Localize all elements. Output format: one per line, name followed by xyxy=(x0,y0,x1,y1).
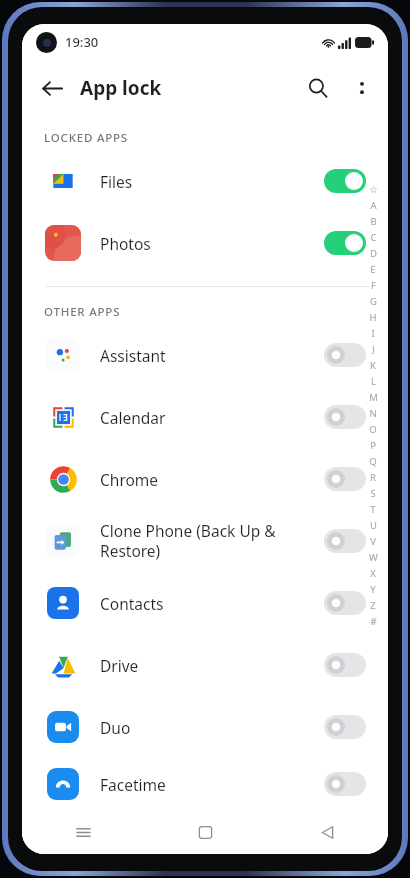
staticText: M xyxy=(369,391,378,404)
button[interactable]: F xyxy=(364,278,382,293)
button[interactable]: Clone Phone (Back Up & Restore) xyxy=(22,510,388,572)
button[interactable]: Locked, on xyxy=(324,231,366,255)
staticText: 19:30 xyxy=(65,33,99,51)
staticText: N xyxy=(369,407,377,420)
button[interactable]: I xyxy=(364,326,382,341)
staticText: O xyxy=(369,423,377,436)
staticText: C xyxy=(370,231,377,244)
staticText: Calendar xyxy=(100,407,316,428)
button[interactable]: Chrome xyxy=(22,448,388,510)
button[interactable]: G xyxy=(364,294,382,309)
staticText: Contacts xyxy=(100,593,316,614)
button[interactable]: Assistant xyxy=(22,324,388,386)
button[interactable]: Unlocked, off xyxy=(324,772,366,796)
button[interactable]: R xyxy=(364,470,382,485)
button[interactable]: S xyxy=(364,486,382,501)
staticText: # xyxy=(370,615,377,628)
staticText: J xyxy=(372,343,375,356)
staticText: P xyxy=(370,439,376,452)
button[interactable]: V xyxy=(364,534,382,549)
staticText: Z xyxy=(370,599,376,612)
button[interactable]: M xyxy=(364,390,382,405)
button[interactable]: Z xyxy=(364,598,382,613)
button[interactable]: Y xyxy=(364,582,382,597)
button[interactable]: Locked, on xyxy=(324,169,366,193)
button[interactable]: Calendar xyxy=(22,386,388,448)
button[interactable]: H xyxy=(364,310,382,325)
staticText: D xyxy=(370,247,377,260)
staticText: OTHER APPS xyxy=(44,304,121,320)
staticText: App lock xyxy=(80,75,162,101)
staticText: E xyxy=(370,263,376,276)
staticText: U xyxy=(370,519,377,532)
button[interactable]: A xyxy=(364,198,382,213)
staticText: LOCKED APPS xyxy=(44,130,128,146)
button[interactable]: More options xyxy=(340,66,384,110)
staticText: Drive xyxy=(100,655,316,676)
staticText: S xyxy=(370,487,376,500)
button[interactable]: Photos xyxy=(22,212,388,274)
button[interactable]: Back xyxy=(266,810,388,854)
staticText: F xyxy=(371,279,376,292)
staticText: Photos xyxy=(100,233,316,254)
button[interactable]: P xyxy=(364,438,382,453)
button[interactable]: J xyxy=(364,342,382,357)
button[interactable]: X xyxy=(364,566,382,581)
button[interactable]: # xyxy=(364,614,382,629)
staticText: A xyxy=(370,199,377,212)
button[interactable]: O xyxy=(364,422,382,437)
button[interactable]: Drive xyxy=(22,634,388,696)
button[interactable]: Files xyxy=(22,150,388,212)
button[interactable]: Home xyxy=(144,810,266,854)
staticText: I xyxy=(371,327,375,340)
button[interactable]: Contacts xyxy=(22,572,388,634)
button[interactable]: U xyxy=(364,518,382,533)
staticText: X xyxy=(370,567,376,580)
staticText: ☆ xyxy=(369,184,378,195)
staticText: Clone Phone (Back Up & Restore) xyxy=(100,520,316,562)
staticText: G xyxy=(370,295,377,308)
button[interactable]: Recent apps xyxy=(22,810,144,854)
button[interactable]: D xyxy=(364,246,382,261)
staticText: Files xyxy=(100,171,316,192)
staticText: L xyxy=(371,375,376,388)
staticText: Assistant xyxy=(100,345,316,366)
button[interactable]: ☆ xyxy=(364,182,382,197)
button[interactable]: Unlocked, off xyxy=(324,467,366,491)
button[interactable]: Unlocked, off xyxy=(324,591,366,615)
button[interactable]: Unlocked, off xyxy=(324,653,366,677)
button[interactable]: Duo xyxy=(22,696,388,758)
button[interactable]: Unlocked, off xyxy=(324,529,366,553)
button[interactable]: Unlocked, off xyxy=(324,405,366,429)
button[interactable]: Search xyxy=(296,66,340,110)
staticText: R xyxy=(370,471,376,484)
button[interactable]: B xyxy=(364,214,382,229)
staticText: T xyxy=(370,503,376,516)
button[interactable]: Back xyxy=(30,66,74,110)
button[interactable]: T xyxy=(364,502,382,517)
staticText: B xyxy=(370,215,377,228)
button[interactable]: Q xyxy=(364,454,382,469)
button[interactable]: C xyxy=(364,230,382,245)
staticText: K xyxy=(370,359,376,372)
staticText: H xyxy=(369,311,377,324)
button[interactable]: W xyxy=(364,550,382,565)
button[interactable]: Unlocked, off xyxy=(324,715,366,739)
staticText: Duo xyxy=(100,717,316,738)
staticText: Chrome xyxy=(100,469,316,490)
button[interactable]: K xyxy=(364,358,382,373)
button[interactable]: N xyxy=(364,406,382,421)
button[interactable]: E xyxy=(364,262,382,277)
staticText: Q xyxy=(369,455,377,468)
button[interactable]: Unlocked, off xyxy=(324,343,366,367)
button[interactable]: Facetime xyxy=(22,758,388,810)
button[interactable]: L xyxy=(364,374,382,389)
staticText: Y xyxy=(370,583,376,596)
staticText: W xyxy=(369,551,378,564)
staticText: V xyxy=(370,535,376,548)
staticText: Facetime xyxy=(100,774,316,795)
